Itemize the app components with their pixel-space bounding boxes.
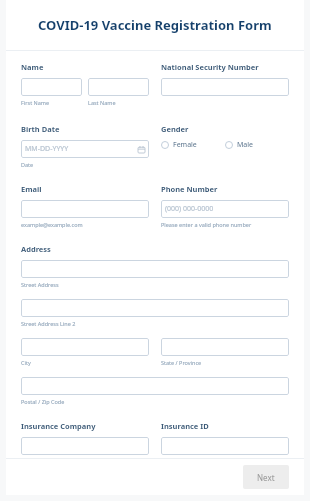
staticText: Postal / Zip Code [21,398,65,405]
button[interactable] [161,78,289,96]
button[interactable] [161,338,289,356]
staticText: Birth Date [21,124,60,134]
button[interactable] [161,437,289,455]
staticText: City [21,359,31,366]
staticText: National Security Number [161,62,259,72]
staticText: example@example.com [21,221,83,228]
button[interactable]: Male [225,139,254,151]
button[interactable] [21,78,82,96]
staticText: Insurance Company [21,421,96,431]
staticText: Street Address Line 2 [21,320,76,327]
staticText: (000) 000-0000 [165,204,214,214]
staticText: Street Address [21,281,59,288]
staticText: State / Province [161,359,202,366]
staticText: MM-DD-YYYY [25,144,69,154]
button[interactable]: Next [243,465,289,489]
staticText: Phone Number [161,184,218,194]
staticText: COVID-19 Vaccine Registration Form [38,16,272,34]
staticText: Please enter a valid phone number [161,221,252,228]
staticText: Email [21,184,42,194]
button[interactable] [88,78,149,96]
button[interactable]: (000) 000-0000 [161,200,289,218]
button[interactable] [21,260,289,278]
staticText: Female [173,140,197,150]
staticText: Date [21,161,34,168]
button[interactable] [21,437,149,455]
other: Open calendar [138,146,145,153]
button[interactable] [21,200,149,218]
staticText: Gender [161,124,189,134]
staticText: Next [257,472,275,483]
staticText: Male [237,140,254,150]
button[interactable] [21,338,149,356]
button[interactable]: Female [161,139,197,151]
staticText: Last Name [88,99,116,106]
staticText: Address [21,244,51,254]
staticText: First Name [21,99,50,106]
staticText: Name [21,62,44,72]
button[interactable] [21,377,289,395]
staticText: Insurance ID [161,421,209,431]
button[interactable]: MM-DD-YYYY [21,140,149,158]
button[interactable] [21,299,289,317]
